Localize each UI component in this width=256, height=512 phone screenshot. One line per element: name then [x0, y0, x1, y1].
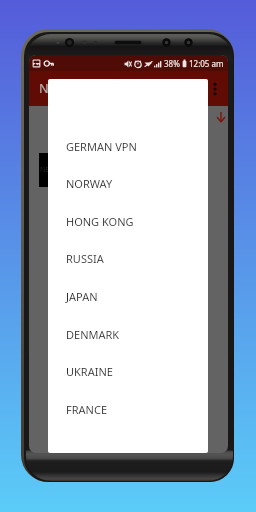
- button[interactable]: RUSSIA: [48, 239, 208, 277]
- button[interactable]: UKRAINE: [48, 352, 208, 390]
- staticText: FRANCE: [66, 402, 108, 417]
- staticText: NETWORK: [40, 165, 55, 175]
- staticText: JAPAN: [66, 289, 98, 304]
- staticText: 38%: [164, 58, 180, 69]
- button[interactable]: NORWAY: [48, 164, 208, 202]
- button[interactable]: HONG KONG: [48, 202, 208, 240]
- staticText: RUSSIA: [66, 251, 104, 266]
- staticText: GERMAN VPN: [66, 139, 137, 154]
- button[interactable]: GERMAN VPN: [48, 127, 208, 165]
- staticText: New VPN: [39, 80, 94, 97]
- staticText: HONG KONG: [66, 214, 134, 229]
- button[interactable]: Download: [212, 110, 228, 124]
- button[interactable]: FRANCE: [48, 390, 208, 428]
- staticText: UKRAINE: [66, 364, 113, 379]
- staticText: NORWAY: [66, 176, 113, 191]
- staticText: DENMARK: [66, 327, 120, 342]
- button[interactable]: JAPAN: [48, 277, 208, 315]
- button[interactable]: More options: [206, 80, 224, 98]
- staticText: 12:05 am: [189, 58, 224, 69]
- button[interactable]: DENMARK: [48, 315, 208, 353]
